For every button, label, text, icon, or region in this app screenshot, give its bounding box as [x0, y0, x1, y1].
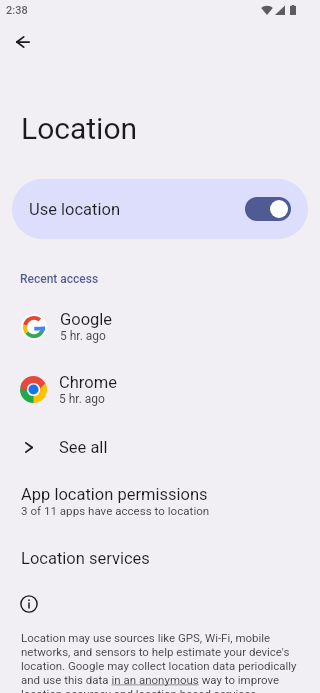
button[interactable]: See all [0, 426, 320, 468]
button[interactable]: Google [0, 302, 320, 351]
staticText: Recent access [20, 272, 99, 286]
staticText: Location services [21, 549, 150, 568]
staticText: Location may use sources like GPS, Wi-Fi… [21, 631, 298, 693]
button[interactable]: Chrome [0, 365, 320, 414]
staticText: Google [60, 310, 113, 329]
staticText: Use location [29, 200, 121, 219]
staticText: Location [21, 111, 138, 146]
staticText: See all [59, 438, 108, 457]
button[interactable]: App location permissions [0, 479, 320, 527]
staticText: 5 hr. ago [60, 329, 106, 343]
staticText: 2:38 [6, 4, 28, 17]
staticText: 5 hr. ago [59, 392, 105, 406]
staticText: App location permissions [21, 485, 208, 504]
staticText: Chrome [59, 373, 117, 392]
button[interactable]: Location services [0, 538, 320, 578]
button[interactable]: Back [4, 23, 42, 61]
staticText: 3 of 11 apps have access to location [21, 504, 210, 518]
button[interactable]: Use location [12, 179, 308, 239]
